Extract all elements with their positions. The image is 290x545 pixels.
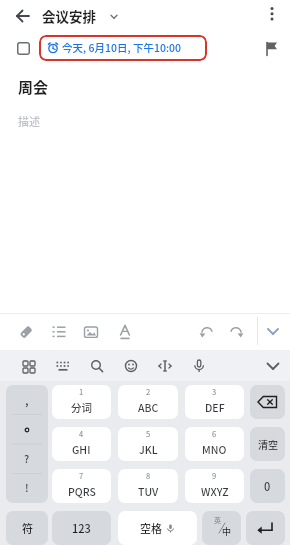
staticText: 分词 xyxy=(71,400,92,415)
button[interactable] xyxy=(10,3,36,29)
staticText: 0 xyxy=(264,478,271,494)
staticText: , xyxy=(25,391,29,408)
button[interactable] xyxy=(262,40,282,58)
button[interactable]: 周会 xyxy=(18,76,218,98)
button[interactable] xyxy=(47,320,71,344)
staticText: 中 xyxy=(222,525,232,538)
staticText: 4 xyxy=(79,428,84,439)
staticText: TUV xyxy=(138,484,159,499)
button[interactable] xyxy=(250,385,285,419)
staticText: 6 xyxy=(212,428,217,439)
button[interactable] xyxy=(262,354,284,378)
staticText: 会议安排 xyxy=(42,6,96,26)
button[interactable] xyxy=(120,354,142,378)
button[interactable]: 英 xyxy=(202,511,241,545)
staticText: 2 xyxy=(146,386,151,397)
staticText: GHI xyxy=(72,442,91,457)
staticText: 英 xyxy=(214,515,221,525)
button[interactable]: 6 xyxy=(185,427,244,461)
button[interactable] xyxy=(86,354,108,378)
staticText: 1 xyxy=(79,386,84,397)
staticText: 123 xyxy=(72,520,91,536)
staticText: 5 xyxy=(146,428,151,439)
button[interactable] xyxy=(154,354,176,378)
staticText: 今天, 6月10日, 下午10:00 xyxy=(62,40,182,55)
staticText: DEF xyxy=(205,400,225,415)
staticText: 3 xyxy=(212,386,217,397)
staticText: JKL xyxy=(139,442,158,457)
staticText: 7 xyxy=(79,470,84,481)
staticText: 9 xyxy=(212,470,217,481)
button[interactable] xyxy=(14,320,38,344)
staticText: ? xyxy=(24,451,30,466)
staticText: 空格 xyxy=(140,520,162,536)
button[interactable] xyxy=(246,511,285,545)
button[interactable]: 空格 xyxy=(118,511,197,545)
button[interactable] xyxy=(224,320,248,344)
button[interactable]: 2 xyxy=(118,385,178,419)
button[interactable] xyxy=(52,354,74,378)
staticText: WXYZ xyxy=(201,484,229,499)
button[interactable] xyxy=(17,42,30,55)
button[interactable]: 3 xyxy=(185,385,244,419)
button[interactable]: 今天, 6月10日, 下午10:00 xyxy=(39,35,207,61)
button[interactable]: 描述 xyxy=(18,113,218,131)
button[interactable]: 0 xyxy=(250,469,285,503)
button[interactable]: 符 xyxy=(6,511,48,545)
button[interactable]: 1 xyxy=(52,385,111,419)
staticText: PQRS xyxy=(68,484,96,499)
button[interactable]: 4 xyxy=(52,427,111,461)
staticText: ABC xyxy=(138,400,159,415)
staticText: 描述 xyxy=(18,113,40,129)
button[interactable]: 8 xyxy=(118,469,178,503)
button[interactable] xyxy=(195,320,219,344)
staticText: 8 xyxy=(146,470,151,481)
button[interactable]: 5 xyxy=(118,427,178,461)
button[interactable]: , xyxy=(6,385,48,503)
staticText: ! xyxy=(25,480,29,495)
button[interactable]: 123 xyxy=(52,511,111,545)
button[interactable]: 会议安排 xyxy=(42,6,122,26)
staticText: 符 xyxy=(22,520,33,536)
button[interactable] xyxy=(113,320,137,344)
button[interactable] xyxy=(263,321,283,341)
staticText: 清空 xyxy=(258,437,278,451)
staticText: 周会 xyxy=(18,76,49,98)
button[interactable]: 清空 xyxy=(250,427,285,461)
button[interactable] xyxy=(188,354,210,378)
button[interactable] xyxy=(18,354,40,378)
button[interactable]: 7 xyxy=(52,469,111,503)
button[interactable] xyxy=(79,320,103,344)
button[interactable] xyxy=(260,2,284,28)
button[interactable]: 9 xyxy=(185,469,244,503)
staticText: MNO xyxy=(202,442,227,457)
